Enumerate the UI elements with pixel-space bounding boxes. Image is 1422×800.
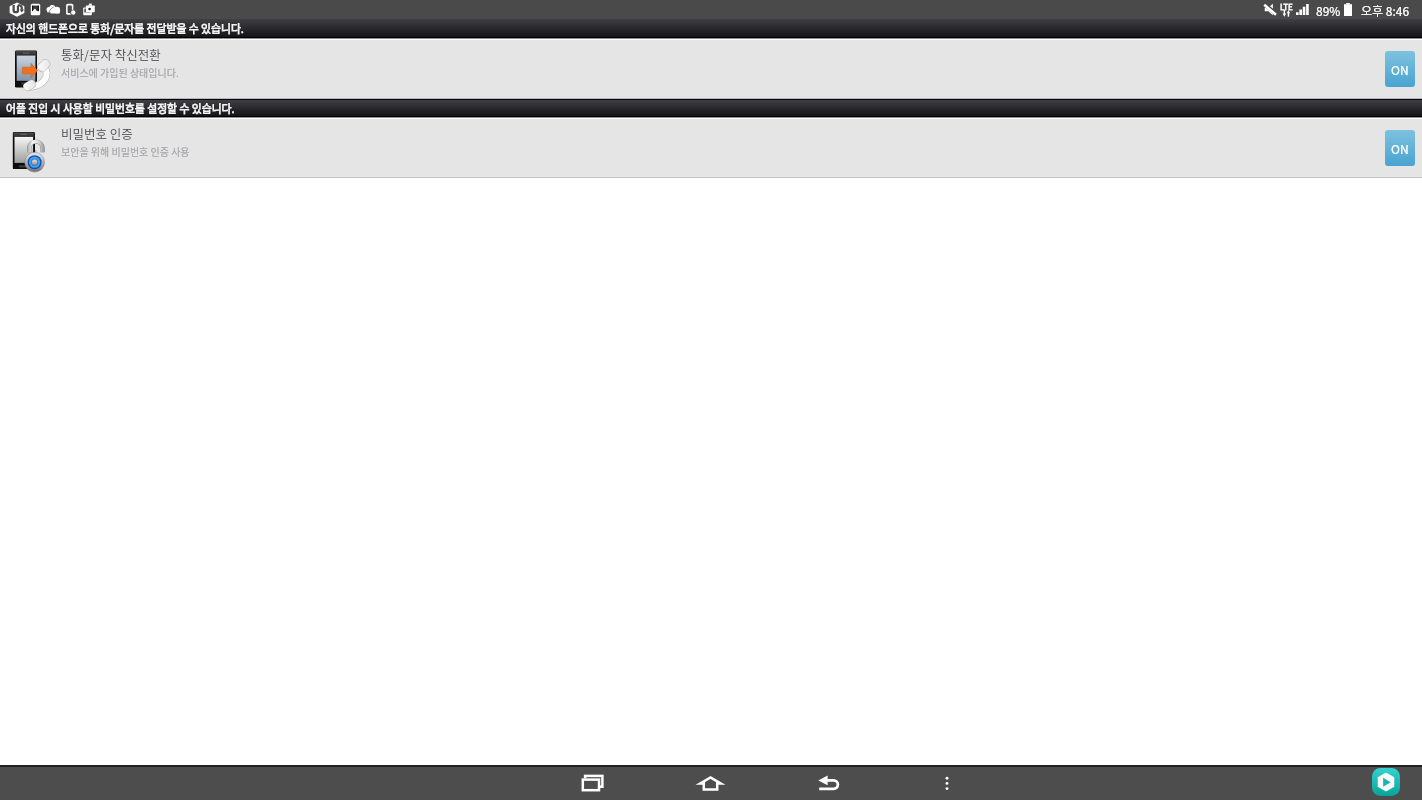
- staticText: 어플 진입 시 사용할 비밀번호를 설정할 수 있습니다.: [6, 100, 235, 116]
- staticText: 서비스에 가입된 상태입니다.: [61, 65, 179, 79]
- button[interactable]: Home: [683, 767, 735, 800]
- staticText: 보안을 위해 비밀번호 인증 사용: [61, 144, 190, 158]
- staticText: 자신의 핸드폰으로 통화/문자를 전달받을 수 있습니다.: [6, 20, 244, 36]
- staticText: LTE: [1280, 1, 1293, 13]
- button[interactable]: ON: [1385, 130, 1415, 166]
- staticText: 통화/문자 착신전환: [61, 45, 161, 63]
- staticText: 89%: [1316, 2, 1341, 19]
- button[interactable]: Back: [803, 767, 855, 800]
- staticText: ON: [1391, 140, 1409, 157]
- staticText: 비밀번호 인증: [61, 124, 133, 142]
- button[interactable]: Recent apps: [567, 767, 619, 800]
- button[interactable]: 비밀번호 인증: [0, 119, 1422, 177]
- button[interactable]: App shortcut: [1372, 768, 1400, 796]
- staticText: ON: [1391, 61, 1409, 78]
- staticText: 오후 8:46: [1361, 2, 1410, 19]
- button[interactable]: 통화/문자 착신전환: [0, 40, 1422, 98]
- button[interactable]: ON: [1385, 51, 1415, 87]
- button[interactable]: More options: [921, 767, 973, 800]
